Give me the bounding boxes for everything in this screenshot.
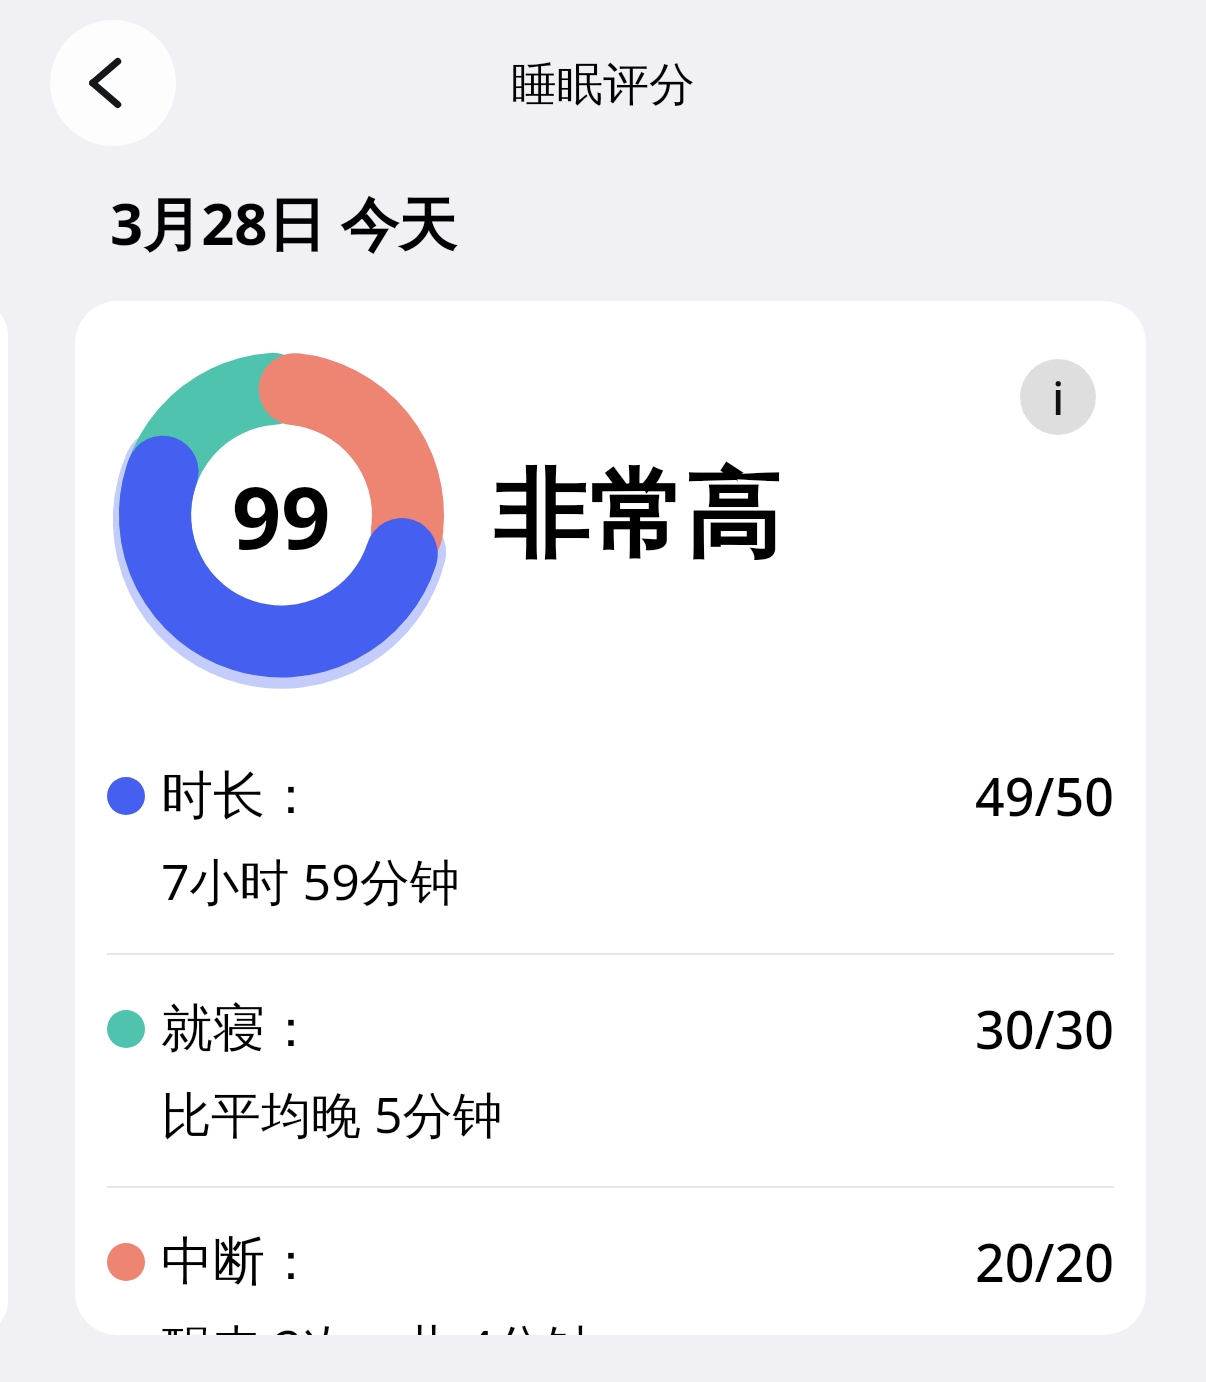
staticText: 时长： — [161, 763, 317, 829]
staticText: 中断： — [161, 1229, 317, 1295]
staticText: 醒来 2次，共 4分钟 — [161, 1313, 595, 1335]
staticText: 就寝： — [161, 996, 317, 1062]
staticText: 3月28日 今天 — [110, 183, 457, 262]
staticText: 20/20 — [975, 1226, 1114, 1297]
button[interactable]: Back — [50, 20, 176, 146]
staticText: 49/50 — [975, 760, 1114, 831]
staticText: i — [1052, 366, 1065, 429]
staticText: 30/30 — [975, 993, 1114, 1064]
staticText: 比平均晚 5分钟 — [161, 1080, 503, 1148]
button[interactable]: 中断： — [107, 1188, 1114, 1335]
staticText: 7小时 59分钟 — [161, 847, 460, 915]
button[interactable]: 就寝： — [107, 955, 1114, 1186]
staticText: 非常高 — [493, 456, 781, 577]
button[interactable]: 时长： — [107, 722, 1114, 953]
button[interactable]: Info — [1020, 359, 1096, 435]
staticText: 睡眠评分 — [511, 56, 695, 114]
staticText: 99 — [232, 457, 331, 574]
